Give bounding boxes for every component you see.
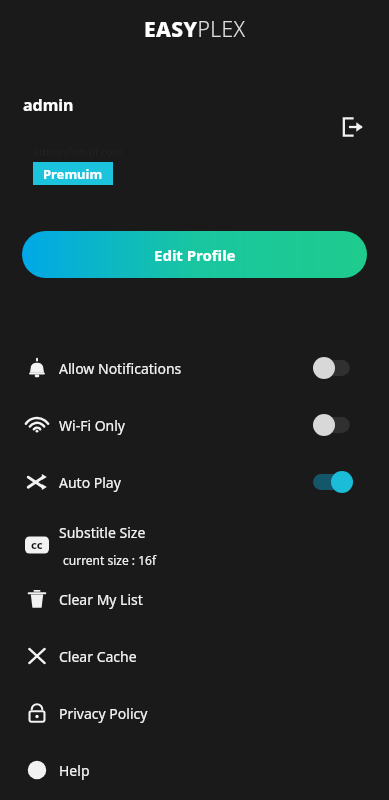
staticText: Auto Play [59, 473, 121, 492]
button[interactable]: Toggle [313, 414, 353, 436]
staticText: Clear My List [59, 590, 143, 609]
button[interactable]: Log out [337, 112, 367, 142]
staticText: Wi-Fi Only [59, 416, 125, 435]
staticText: current size : 16f [63, 552, 157, 568]
staticText: Premuim [43, 165, 103, 183]
button[interactable]: Premuim [33, 162, 113, 185]
staticText: Substitle Size [59, 523, 146, 542]
button[interactable]: Allow Notifications [0, 357, 389, 379]
button[interactable]: Help [0, 759, 389, 781]
button[interactable]: Toggle [313, 357, 353, 379]
staticText: EASYPLEX [144, 15, 246, 44]
staticText: Allow Notifications [59, 359, 182, 378]
button[interactable]: CC [0, 516, 389, 574]
staticText: Privacy Policy [59, 704, 148, 723]
button[interactable]: Wi-Fi Only [0, 414, 389, 436]
staticText: Help [59, 761, 90, 780]
button[interactable]: Edit Profile [22, 231, 367, 278]
staticText: admin [23, 94, 74, 116]
button[interactable]: Clear My List [0, 588, 389, 610]
staticText: CC [31, 539, 43, 551]
button[interactable]: Auto Play [0, 471, 389, 493]
staticText: Edit Profile [154, 245, 236, 265]
button[interactable]: Privacy Policy [0, 702, 389, 724]
staticText: Clear Cache [59, 647, 137, 666]
button[interactable]: Toggle [313, 471, 353, 493]
button[interactable]: Clear Cache [0, 645, 389, 667]
